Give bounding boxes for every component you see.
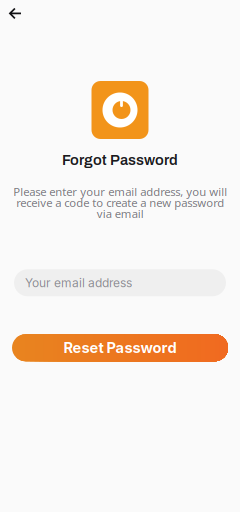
staticText: Your email address xyxy=(25,275,132,290)
button[interactable]: Back xyxy=(0,0,32,30)
button[interactable]: Reset Password xyxy=(0,334,240,361)
staticText: Reset Password xyxy=(63,339,176,357)
button[interactable]: Your email address xyxy=(0,269,240,296)
staticText: Please enter your email address, you wil… xyxy=(13,184,227,221)
staticText: Forgot Password xyxy=(62,152,178,168)
